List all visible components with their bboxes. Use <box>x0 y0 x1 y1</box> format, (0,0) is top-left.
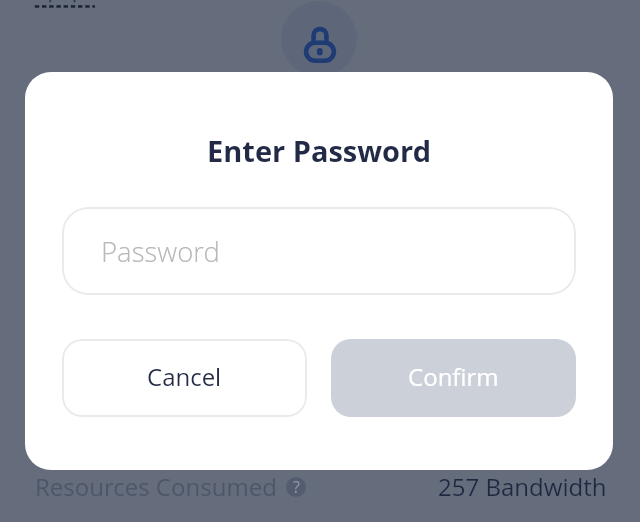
button[interactable]: Resources Consumed <box>35 470 306 503</box>
staticText: 257 Bandwidth <box>438 470 607 503</box>
staticText: ? <box>293 477 300 496</box>
staticText: Resources Consumed <box>35 470 277 503</box>
staticText: Confirm <box>408 360 499 393</box>
button[interactable]: Cancel <box>62 339 307 417</box>
staticText: Enter Password <box>25 131 613 170</box>
staticText: Cancel <box>147 360 222 393</box>
staticText: Password <box>101 233 220 270</box>
button[interactable]: Confirm <box>331 339 576 417</box>
button[interactable]: Password <box>62 207 576 295</box>
